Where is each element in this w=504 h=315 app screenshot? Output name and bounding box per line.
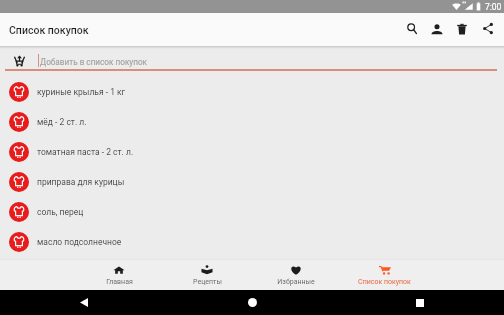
staticText: Список покупок [9,24,89,36]
staticText: мёд - 2 ст. л. [37,117,87,127]
button[interactable]: масло подсолнечное [0,227,504,257]
staticText: приправа для курицы [37,177,125,187]
staticText: куриные крылья - 1 кг [37,87,126,97]
button[interactable]: Избранные [251,260,340,290]
staticText: томатная паста - 2 ст. л. [37,147,134,157]
staticText: 7:00 [485,2,502,12]
button[interactable]: Back [0,290,168,315]
staticText: Рецепты [193,278,222,286]
button[interactable]: Search [401,18,422,39]
button[interactable]: Recents [336,290,504,315]
button[interactable]: куриные крылья - 1 кг [0,77,504,107]
staticText: соль, перец [37,207,84,217]
button[interactable]: Share [477,18,498,39]
staticText: масло подсолнечное [37,237,122,247]
button[interactable]: приправа для курицы [0,167,504,197]
staticText: Добавить в список покупок [40,57,148,67]
staticText: Избранные [277,278,315,286]
staticText: Главная [106,278,133,286]
button[interactable]: Add to shopping list [8,49,30,71]
button[interactable]: томатная паста - 2 ст. л. [0,137,504,167]
button[interactable]: Delete [451,18,472,39]
button[interactable]: Account [426,18,447,39]
button[interactable]: Главная [75,260,163,290]
button[interactable]: Список покупок [340,260,429,290]
button[interactable]: Home [168,290,336,315]
staticText: Список покупок [358,278,411,286]
button[interactable]: Рецепты [163,260,251,290]
button[interactable]: мёд - 2 ст. л. [0,107,504,137]
button[interactable]: соль, перец [0,197,504,227]
